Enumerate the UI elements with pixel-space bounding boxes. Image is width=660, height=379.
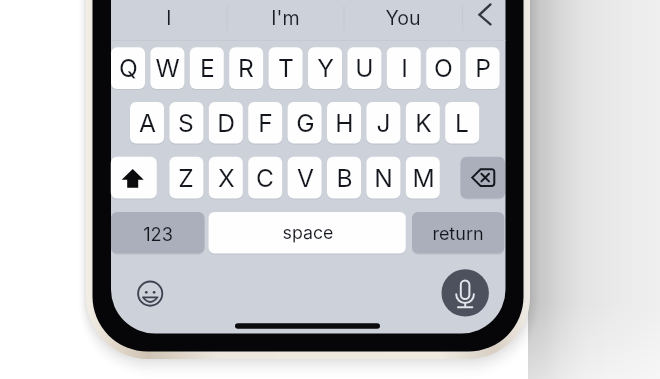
button[interactable]: Z: [169, 157, 203, 199]
button[interactable]: O: [426, 47, 460, 89]
button[interactable]: space: [209, 212, 406, 254]
button[interactable]: A: [130, 102, 164, 144]
staticText: N: [374, 163, 393, 193]
button[interactable]: Y: [308, 47, 342, 89]
button[interactable]: Shift: [111, 157, 157, 199]
staticText: G: [296, 108, 315, 138]
button[interactable]: I'm: [227, 1, 344, 35]
staticText: D: [217, 108, 235, 138]
button[interactable]: T: [269, 47, 303, 89]
staticText: return: [432, 223, 484, 245]
button[interactable]: Backspace: [461, 157, 506, 199]
button[interactable]: E: [190, 47, 224, 89]
staticText: 123: [143, 223, 173, 245]
staticText: H: [335, 108, 354, 138]
button[interactable]: K: [406, 102, 440, 144]
button[interactable]: I: [387, 47, 421, 89]
staticText: A: [139, 108, 156, 138]
staticText: E: [200, 53, 215, 83]
staticText: You: [385, 6, 421, 30]
button[interactable]: Previous suggestions: [462, 2, 506, 36]
button[interactable]: F: [248, 102, 282, 144]
button[interactable]: D: [209, 102, 243, 144]
staticText: O: [434, 53, 453, 83]
button[interactable]: P: [466, 47, 500, 89]
staticText: I: [401, 53, 408, 83]
staticText: R: [238, 53, 254, 83]
button[interactable]: Dictation: [441, 267, 489, 315]
button[interactable]: V: [288, 157, 322, 199]
button[interactable]: Emoji keyboard: [127, 272, 173, 318]
button[interactable]: W: [150, 47, 184, 89]
button[interactable]: R: [229, 47, 263, 89]
button[interactable]: H: [327, 102, 361, 144]
button[interactable]: N: [366, 157, 400, 199]
button[interactable]: G: [288, 102, 322, 144]
button[interactable]: return: [412, 213, 504, 255]
button[interactable]: J: [366, 102, 400, 144]
staticText: M: [412, 163, 435, 193]
staticText: Z: [178, 163, 194, 193]
staticText: Y: [317, 53, 334, 83]
button[interactable]: C: [248, 157, 282, 199]
staticText: C: [256, 163, 274, 193]
staticText: T: [278, 53, 294, 83]
staticText: K: [415, 108, 432, 138]
staticText: B: [336, 163, 353, 193]
staticText: Q: [119, 53, 138, 83]
button[interactable]: X: [209, 157, 243, 199]
staticText: I: [166, 6, 172, 30]
button[interactable]: U: [347, 47, 381, 89]
button[interactable]: I: [111, 1, 227, 35]
staticText: X: [218, 163, 235, 193]
button[interactable]: You: [343, 1, 462, 35]
staticText: J: [376, 108, 391, 138]
staticText: P: [475, 53, 491, 83]
staticText: F: [258, 108, 273, 138]
button[interactable]: M: [406, 157, 440, 199]
staticText: L: [455, 108, 469, 138]
staticText: space: [282, 222, 334, 244]
button[interactable]: S: [169, 102, 203, 144]
staticText: V: [297, 163, 314, 193]
button[interactable]: L: [445, 102, 479, 144]
button[interactable]: 123: [111, 213, 205, 255]
staticText: S: [178, 108, 194, 138]
staticText: W: [155, 53, 180, 83]
button[interactable]: B: [327, 157, 361, 199]
staticText: U: [355, 53, 374, 83]
staticText: I'm: [271, 6, 300, 30]
button[interactable]: Q: [111, 47, 145, 89]
